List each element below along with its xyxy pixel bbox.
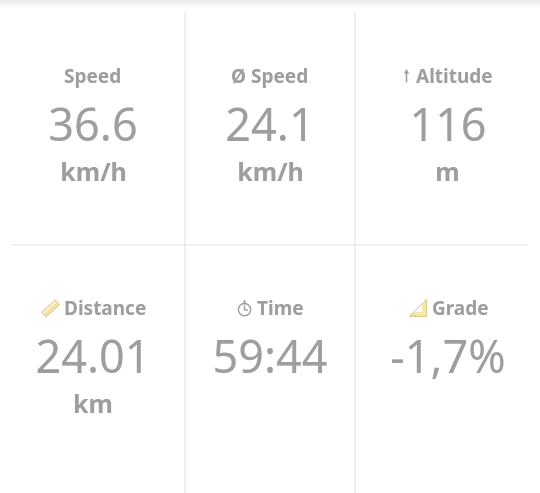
button[interactable]: Altitude bbox=[398, 63, 497, 188]
staticText: Speed bbox=[64, 63, 122, 89]
staticText: 116 bbox=[409, 93, 487, 154]
button[interactable]: Grade bbox=[386, 295, 510, 386]
staticText: m bbox=[435, 154, 460, 188]
staticText: Time bbox=[257, 295, 304, 321]
staticText: -1,7% bbox=[390, 325, 506, 386]
staticText: Grade bbox=[432, 295, 489, 321]
staticText: Ø bbox=[231, 63, 247, 89]
button[interactable]: Speed bbox=[44, 63, 142, 188]
button[interactable]: Ø bbox=[221, 63, 319, 188]
button[interactable]: Time bbox=[208, 295, 332, 386]
button[interactable]: Distance bbox=[31, 295, 155, 420]
staticText: 24.01 bbox=[35, 325, 151, 386]
staticText: Distance bbox=[64, 295, 147, 321]
staticText: Speed bbox=[251, 63, 309, 89]
staticText: 59:44 bbox=[212, 325, 328, 386]
staticText: Altitude bbox=[416, 63, 493, 89]
staticText: km/h bbox=[237, 154, 304, 188]
staticText: km bbox=[73, 386, 113, 420]
staticText: 36.6 bbox=[48, 93, 138, 154]
staticText: km/h bbox=[60, 154, 127, 188]
staticText: 24.1 bbox=[225, 93, 315, 154]
